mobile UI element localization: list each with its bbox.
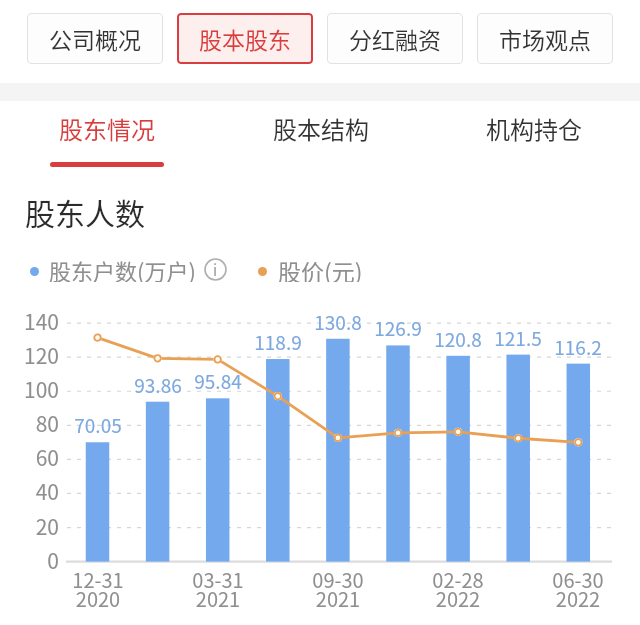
staticText: 机构持仓 <box>486 111 582 146</box>
staticText: 股价(元) <box>278 254 363 282</box>
staticText: i <box>213 259 218 281</box>
staticText: 140 <box>0 306 59 336</box>
button[interactable]: 机构持仓 <box>427 99 640 169</box>
staticText: 121.5 <box>484 324 552 352</box>
staticText: 116.2 <box>544 333 612 361</box>
staticText: 20 <box>0 511 59 541</box>
button[interactable]: 说明 <box>204 258 227 281</box>
staticText: 股本结构 <box>273 111 369 146</box>
staticText: 130.8 <box>304 308 372 336</box>
staticText: 120.8 <box>424 325 492 353</box>
button[interactable]: 市场观点 <box>477 13 613 64</box>
staticText: 126.9 <box>364 314 432 342</box>
button[interactable]: 分红融资 <box>327 13 463 64</box>
staticText: 分红融资 <box>349 22 441 55</box>
staticText: 120 <box>0 340 59 370</box>
staticText: 80 <box>0 408 59 438</box>
staticText: 100 <box>0 374 59 404</box>
staticText: 02-28 2022 <box>410 565 506 613</box>
staticText: 03-31 2021 <box>170 565 266 613</box>
button[interactable]: 股本结构 <box>214 99 427 169</box>
staticText: 股本股东 <box>199 22 291 55</box>
staticText: 06-30 2022 <box>530 565 626 613</box>
staticText: 60 <box>0 442 59 472</box>
staticText: 股东情况 <box>59 111 155 146</box>
staticText: 09-30 2021 <box>290 565 386 613</box>
staticText: 70.05 <box>64 411 132 439</box>
button[interactable]: 股东情况 <box>0 99 214 169</box>
staticText: 0 <box>0 545 59 575</box>
staticText: 12-31 2020 <box>50 565 146 613</box>
staticText: 95.84 <box>184 367 252 395</box>
button[interactable]: 股本股东 <box>177 13 313 64</box>
staticText: 股东人数 <box>25 190 145 233</box>
staticText: 市场观点 <box>499 22 591 55</box>
staticText: 股东户数(万户) <box>49 254 196 282</box>
staticText: 93.86 <box>124 371 192 399</box>
staticText: 40 <box>0 476 59 506</box>
button[interactable]: 公司概况 <box>27 13 163 64</box>
staticText: 公司概况 <box>49 22 141 55</box>
staticText: 118.9 <box>244 328 312 356</box>
